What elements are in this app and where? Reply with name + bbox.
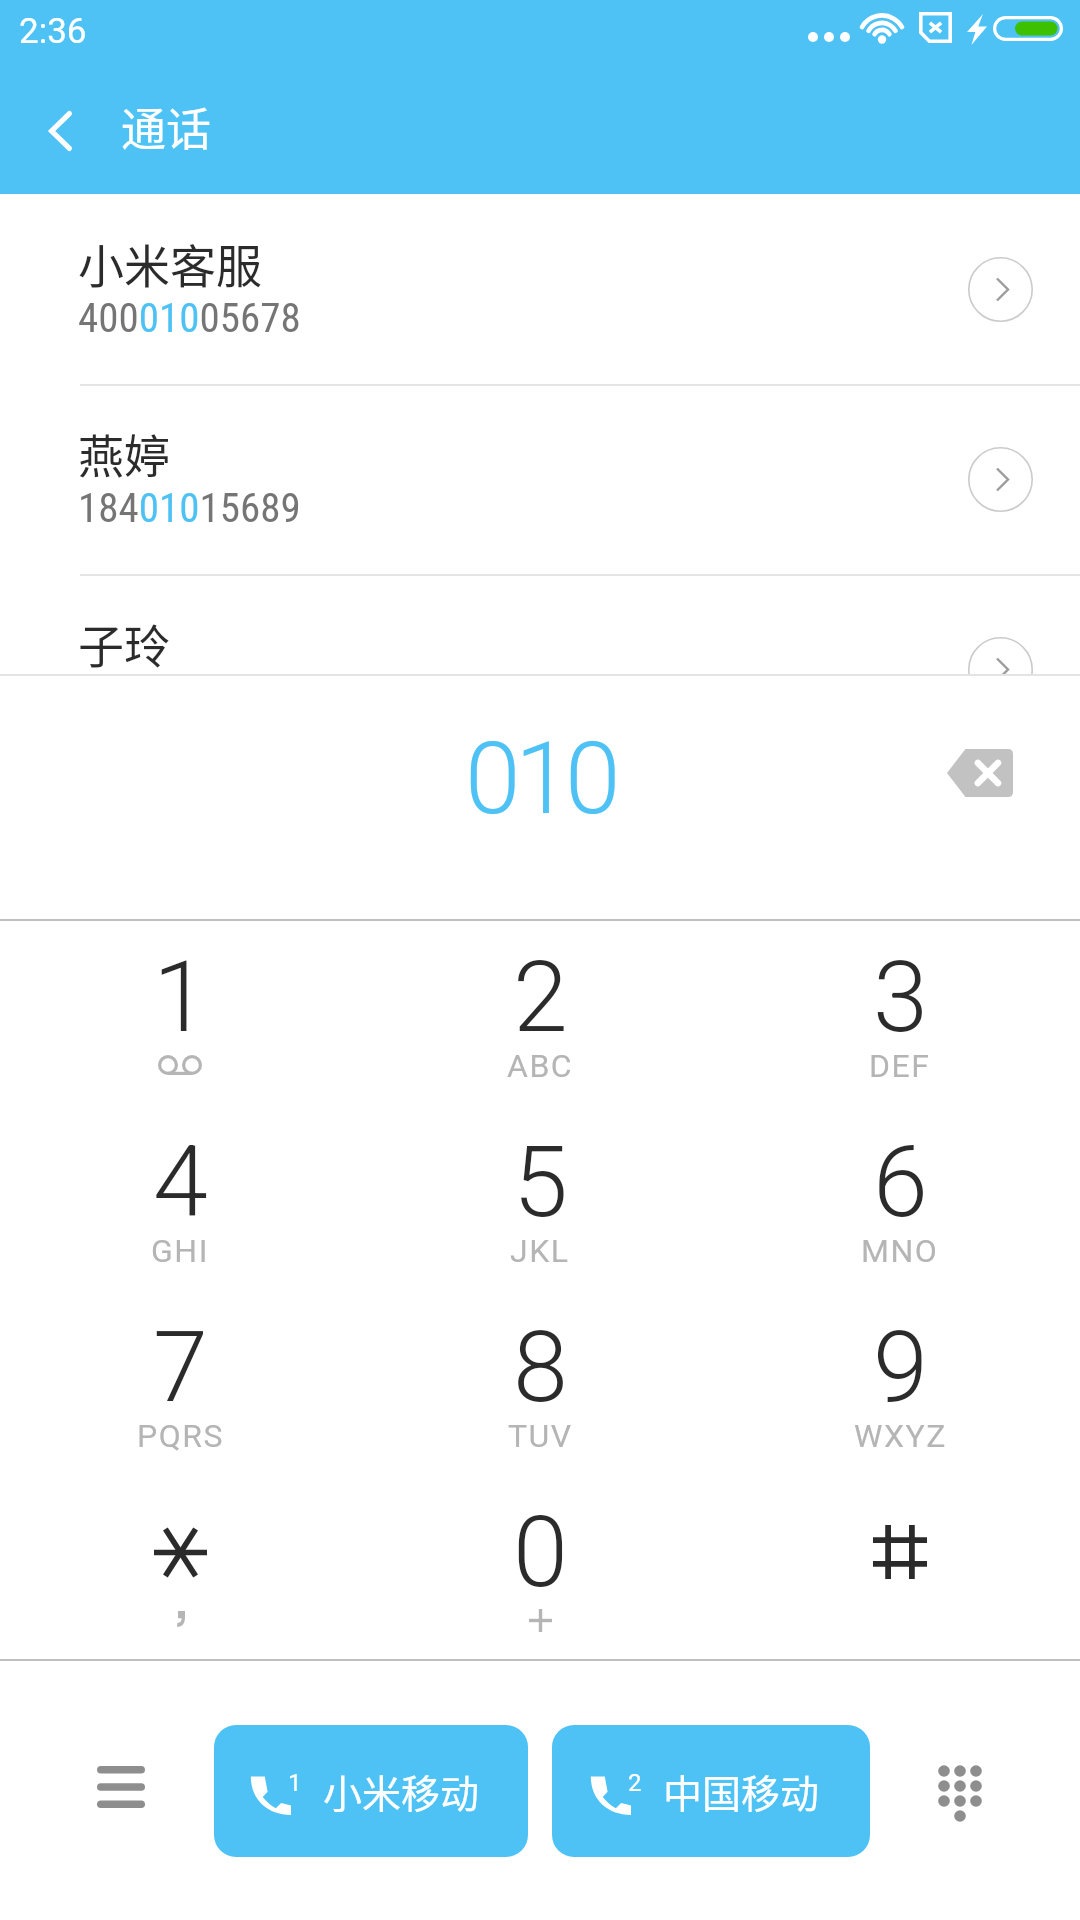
button[interactable]: 9 bbox=[720, 1291, 1080, 1476]
button[interactable] bbox=[0, 1476, 360, 1661]
button[interactable]: Dialpad bbox=[938, 1765, 982, 1817]
staticText: DEF bbox=[869, 1047, 931, 1085]
staticText: 9 bbox=[873, 1309, 928, 1425]
staticText: 2 bbox=[513, 939, 568, 1055]
staticText: 中国移动 bbox=[663, 1763, 820, 1819]
staticText: WXYZ bbox=[854, 1417, 947, 1455]
staticText: 18401015689 bbox=[78, 484, 301, 532]
staticText: 燕婷 bbox=[78, 420, 170, 487]
staticText: TUV bbox=[508, 1417, 573, 1455]
staticText: 6 bbox=[873, 1124, 928, 1240]
button[interactable]: 6 bbox=[720, 1106, 1080, 1291]
staticText: PQRS bbox=[137, 1417, 224, 1455]
staticText: 3 bbox=[873, 939, 928, 1055]
staticText: 小米移动 bbox=[323, 1763, 480, 1819]
staticText: MNO bbox=[861, 1232, 939, 1270]
button[interactable]: 1 bbox=[0, 921, 360, 1106]
staticText: 1 bbox=[153, 939, 208, 1055]
button[interactable]: 3 bbox=[720, 921, 1080, 1106]
staticText: 5 bbox=[513, 1124, 568, 1240]
button[interactable]: 5 bbox=[360, 1106, 720, 1291]
button[interactable]: 4 bbox=[0, 1106, 360, 1291]
staticText: 2:36 bbox=[19, 11, 87, 52]
button[interactable]: 2 bbox=[360, 921, 720, 1106]
button[interactable]: Back bbox=[0, 68, 120, 194]
staticText: 子玲 bbox=[78, 610, 170, 676]
button[interactable]: 8 bbox=[360, 1291, 720, 1476]
staticText: 8 bbox=[513, 1309, 568, 1425]
button[interactable] bbox=[720, 1476, 1080, 1661]
staticText: 7 bbox=[153, 1309, 208, 1425]
staticText: 40001005678 bbox=[78, 294, 301, 342]
button[interactable]: 2 bbox=[552, 1725, 870, 1857]
staticText: 1 bbox=[288, 1769, 302, 1797]
button[interactable]: 子玲 bbox=[0, 574, 1080, 676]
staticText: GHI bbox=[151, 1232, 209, 1270]
button[interactable]: Menu bbox=[97, 1766, 145, 1808]
button[interactable]: 燕婷 bbox=[0, 384, 1080, 574]
staticText: 0 bbox=[513, 1494, 568, 1610]
button[interactable]: 1 bbox=[214, 1725, 528, 1857]
staticText: ABC bbox=[507, 1047, 574, 1085]
staticText: JKL bbox=[510, 1232, 570, 1270]
button[interactable]: 7 bbox=[0, 1291, 360, 1476]
staticText: 小米客服 bbox=[78, 230, 262, 297]
staticText: 通话 bbox=[121, 94, 212, 159]
button[interactable]: Delete bbox=[920, 713, 1040, 833]
staticText: 010 bbox=[465, 720, 615, 837]
staticText: 2 bbox=[628, 1769, 642, 1797]
staticText: 4 bbox=[153, 1124, 208, 1240]
button[interactable]: 0 bbox=[360, 1476, 720, 1661]
button[interactable]: 小米客服 bbox=[0, 194, 1080, 384]
